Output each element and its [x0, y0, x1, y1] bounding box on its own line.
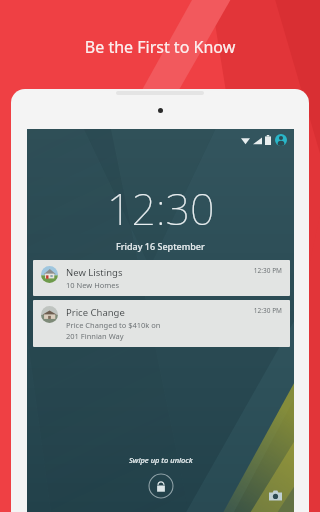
button[interactable]: Unlock	[148, 473, 174, 499]
staticText: Friday 16 September	[116, 240, 205, 252]
button[interactable]: Camera	[267, 487, 283, 503]
staticText: New Listings	[66, 266, 123, 279]
staticText: Price Change	[66, 306, 125, 319]
staticText: 201 Finnian Way	[66, 331, 124, 341]
staticText: 10 New Homes	[66, 280, 120, 290]
button[interactable]: Price Change	[33, 300, 290, 347]
staticText: 12:30	[107, 179, 215, 238]
staticText: Be the First to Know	[0, 36, 320, 58]
button[interactable]: New Listings	[33, 260, 290, 296]
button[interactable]: User profile	[275, 134, 287, 146]
staticText: Price Changed to $410k on	[66, 320, 161, 330]
staticText: 12:30 PM	[253, 266, 282, 275]
staticText: 12:30 PM	[253, 306, 282, 315]
staticText: Swipe up to unlock	[129, 455, 193, 465]
